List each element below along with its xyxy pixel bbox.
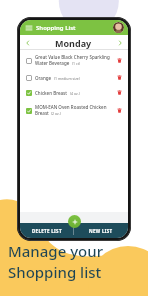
button[interactable]: Add item bbox=[68, 215, 81, 228]
button[interactable]: Delete item bbox=[115, 106, 124, 115]
staticText: MOM-EAN Oven Roasted Chicken bbox=[35, 104, 107, 110]
staticText: NEW LIST bbox=[89, 228, 113, 234]
staticText: Orange bbox=[35, 75, 52, 81]
button[interactable]: Delete item bbox=[115, 56, 124, 65]
button[interactable]: Checked bbox=[24, 88, 33, 97]
staticText: Chicken Breast bbox=[35, 90, 68, 96]
staticText: Shopping list bbox=[8, 262, 102, 282]
staticText: Great Value Black Cherry Sparkling bbox=[35, 54, 110, 60]
button[interactable]: Delete item bbox=[115, 88, 124, 97]
button[interactable]: Unchecked bbox=[24, 56, 33, 65]
staticText: (1 ct) bbox=[72, 61, 80, 66]
button[interactable]: Unchecked bbox=[20, 70, 128, 85]
staticText: Manage your bbox=[8, 241, 103, 261]
staticText: Monday bbox=[55, 37, 92, 49]
staticText: DELETE LIST bbox=[32, 228, 62, 234]
button[interactable]: Unchecked bbox=[24, 73, 33, 82]
button[interactable]: Checked bbox=[24, 106, 33, 115]
staticText: Water Beverage bbox=[35, 60, 70, 66]
button[interactable]: Previous day bbox=[24, 39, 32, 47]
button[interactable]: Checked bbox=[20, 85, 128, 100]
button[interactable]: Next day bbox=[116, 39, 124, 47]
button[interactable]: DELETE LIST bbox=[20, 223, 73, 238]
staticText: (1 medium size) bbox=[54, 76, 80, 81]
button[interactable]: Profile bbox=[113, 22, 124, 33]
staticText: Shopping List bbox=[36, 24, 76, 32]
button[interactable]: Unchecked bbox=[20, 50, 128, 70]
button[interactable]: NEW LIST bbox=[74, 223, 128, 238]
staticText: (4 oz.) bbox=[70, 91, 80, 96]
button[interactable]: Menu bbox=[24, 23, 33, 32]
button[interactable]: Checked bbox=[20, 100, 128, 120]
button[interactable]: Delete item bbox=[115, 73, 124, 82]
staticText: (2 oz.) bbox=[51, 111, 61, 116]
staticText: Breast bbox=[35, 110, 49, 116]
